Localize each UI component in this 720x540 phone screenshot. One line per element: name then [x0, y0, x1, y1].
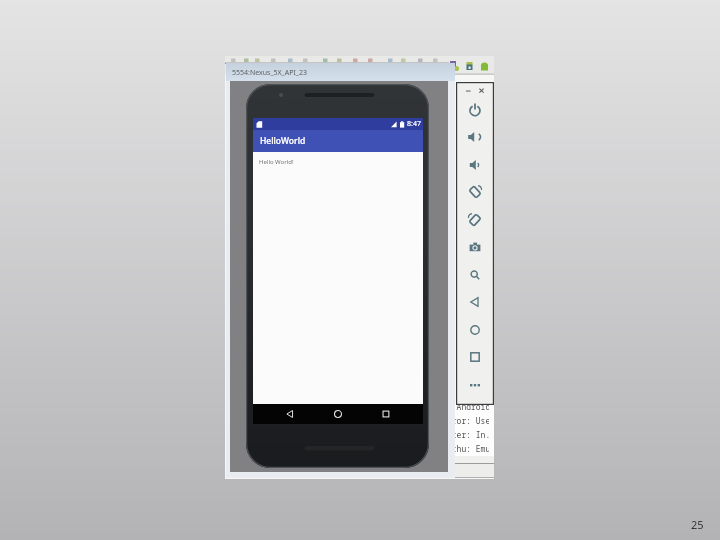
button[interactable]: Volume up: [467, 129, 483, 145]
button[interactable]: Screenshot: [467, 239, 483, 255]
button[interactable]: Back: [467, 294, 483, 310]
staticText: 8:47: [407, 119, 421, 129]
staticText: eter: In.: [447, 429, 489, 440]
button[interactable]: Close: [477, 86, 486, 95]
staticText: 5554:Nexus_5X_API_23: [232, 68, 307, 78]
button[interactable]: Home: [467, 322, 483, 338]
staticText: 25: [691, 517, 704, 532]
staticText: HelloWorld: [260, 135, 306, 147]
button[interactable]: Minimize: [464, 86, 473, 95]
staticText: Hello World!: [259, 158, 294, 166]
button[interactable]: Zoom: [467, 267, 483, 283]
button[interactable]: Power: [467, 102, 483, 118]
staticText: rror: Use: [447, 415, 489, 426]
staticText: o Android: [447, 401, 489, 412]
button[interactable]: More: [467, 377, 483, 393]
button[interactable]: Rotate right: [467, 212, 483, 228]
button[interactable]: Volume down: [467, 157, 483, 173]
staticText: nchu: Emu: [447, 443, 489, 453]
button[interactable]: Overview: [467, 349, 483, 365]
button[interactable]: Rotate left: [467, 184, 483, 200]
